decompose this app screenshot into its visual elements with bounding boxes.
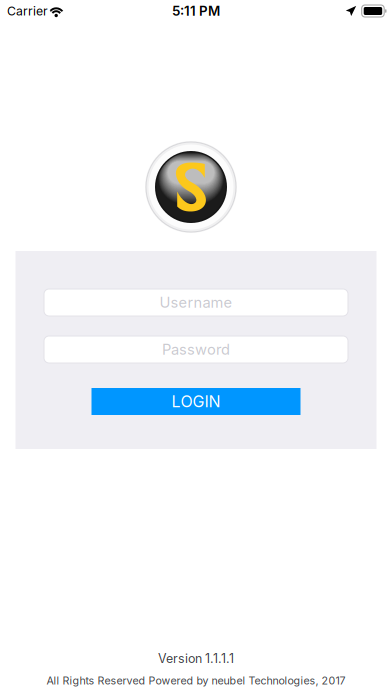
staticText: Username xyxy=(159,294,232,311)
button[interactable]: LOGIN xyxy=(91,388,300,415)
staticText: Password xyxy=(162,341,230,358)
staticText: Version 1.1.1.1 xyxy=(158,651,234,666)
staticText: All Rights Reserved Powered by neubel Te… xyxy=(46,674,345,687)
button[interactable]: Username xyxy=(44,289,348,316)
button[interactable]: Password xyxy=(44,336,348,363)
staticText: 5:11 PM xyxy=(172,3,220,19)
staticText: Carrier xyxy=(7,4,48,18)
staticText: LOGIN xyxy=(171,392,220,411)
